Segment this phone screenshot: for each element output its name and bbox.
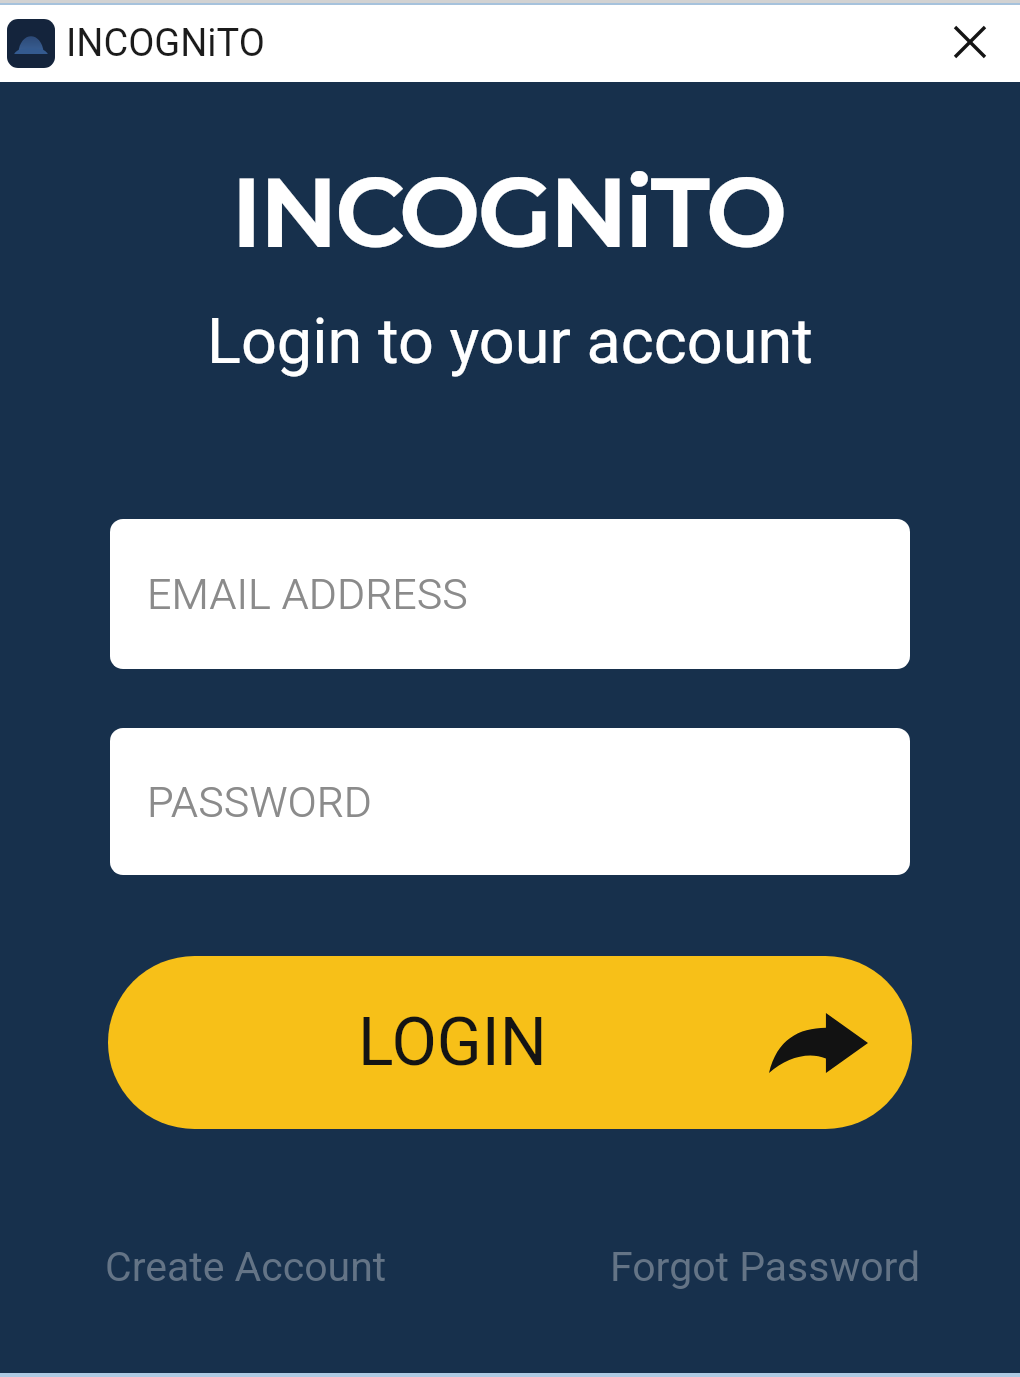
button[interactable]: PASSWORD bbox=[110, 728, 910, 875]
staticText: INCOGNiTO bbox=[66, 21, 265, 66]
button[interactable]: Forgot Password bbox=[606, 1233, 925, 1301]
staticText: EMAIL ADDRESS bbox=[147, 569, 468, 619]
button[interactable]: LOGIN bbox=[108, 956, 912, 1129]
staticText: INCOGNiTO bbox=[231, 153, 785, 271]
staticText: PASSWORD bbox=[147, 777, 372, 827]
staticText: Login to your account bbox=[207, 305, 813, 379]
staticText: Create Account bbox=[105, 1243, 387, 1291]
staticText: Forgot Password bbox=[610, 1243, 921, 1291]
button[interactable]: Create Account bbox=[101, 1233, 391, 1301]
staticText: LOGIN bbox=[358, 1004, 547, 1081]
button[interactable]: EMAIL ADDRESS bbox=[110, 519, 910, 669]
button[interactable]: Close bbox=[920, 5, 1020, 82]
